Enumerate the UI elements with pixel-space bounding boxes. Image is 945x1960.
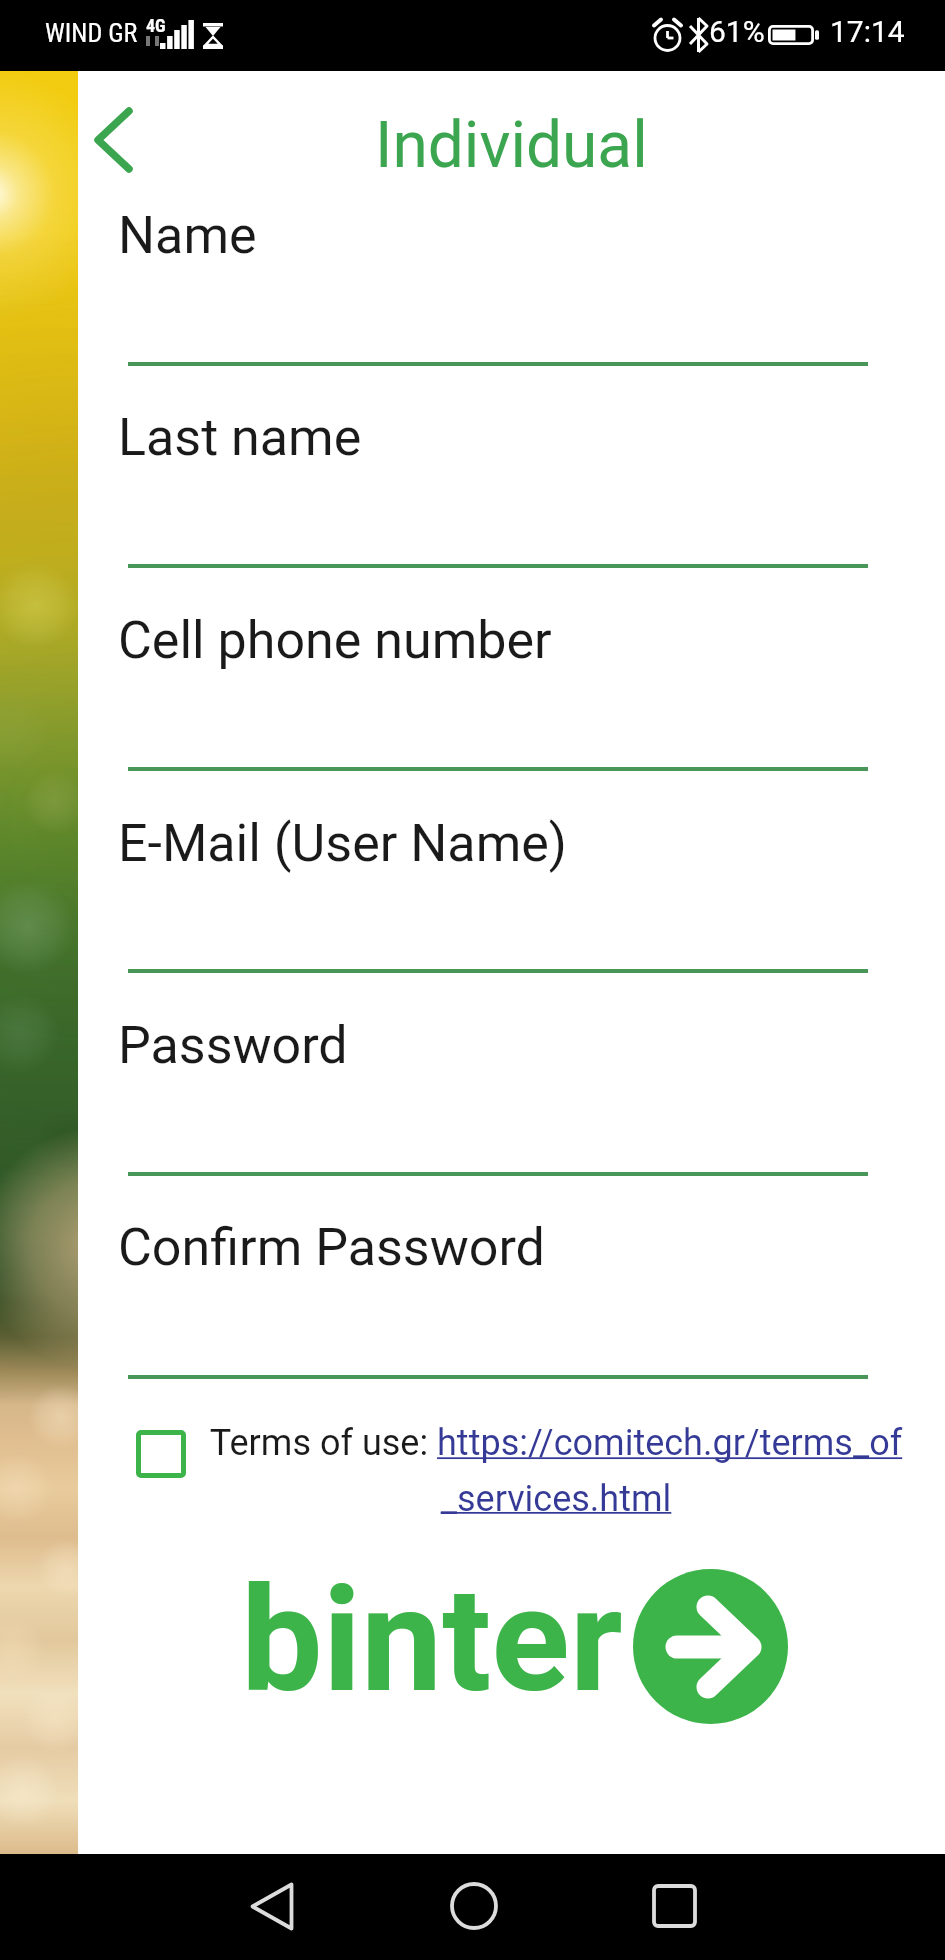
staticText: Confirm Password — [118, 1217, 545, 1278]
staticText: Individual — [375, 108, 648, 183]
button[interactable]: Name — [78, 162, 945, 292]
button[interactable]: Recent apps — [628, 1858, 720, 1954]
button[interactable]: E-Mail (User Name) — [78, 770, 945, 900]
staticText: E-Mail (User Name) — [118, 813, 567, 874]
button[interactable]: Cell phone number — [78, 567, 945, 697]
button[interactable]: Back — [226, 1858, 318, 1954]
button[interactable]: Home — [428, 1858, 520, 1954]
staticText: Last name — [118, 407, 362, 468]
staticText: WIND GR — [45, 18, 138, 48]
button[interactable]: binter — [241, 1555, 623, 1725]
staticText: Cell phone number — [118, 610, 552, 671]
button[interactable]: Last name — [78, 364, 945, 494]
button[interactable]: Accept terms of use — [136, 1430, 186, 1478]
staticText: binter — [241, 1555, 623, 1725]
staticText: 61% — [709, 14, 765, 49]
button[interactable]: Confirm Password — [78, 1174, 945, 1304]
staticText: Name — [118, 205, 257, 266]
button[interactable]: Back — [65, 93, 161, 187]
staticText: 4G — [146, 15, 166, 36]
button[interactable]: Continue — [633, 1569, 788, 1724]
button[interactable]: Terms of use: https://comitech.gr/terms_… — [201, 1422, 911, 1519]
staticText: 17:14 — [830, 14, 905, 49]
button[interactable]: Password — [78, 972, 945, 1102]
staticText: Password — [118, 1015, 348, 1076]
